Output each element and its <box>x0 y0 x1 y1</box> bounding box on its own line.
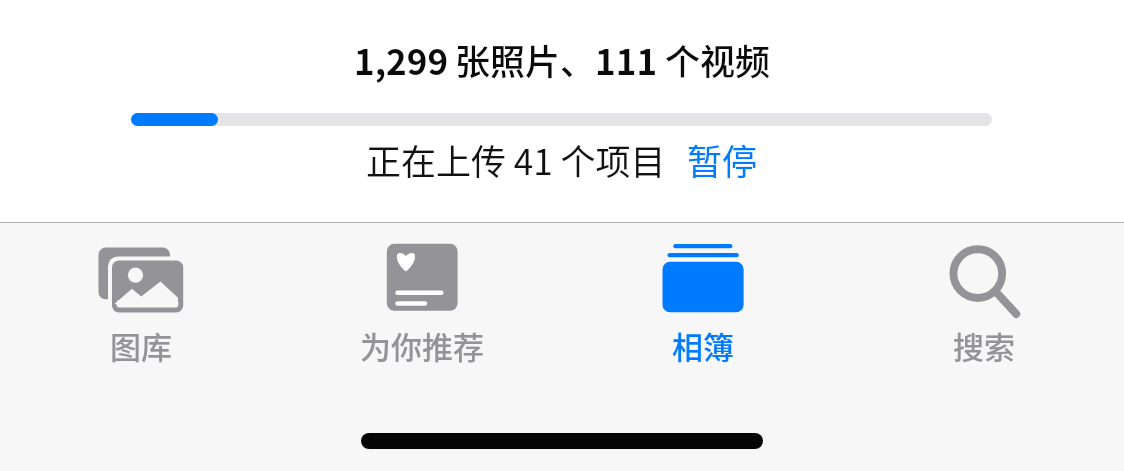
button[interactable]: 图库 <box>0 223 281 471</box>
button[interactable]: 搜索 <box>843 223 1124 471</box>
other: For You <box>376 243 468 318</box>
button[interactable]: 暂停 <box>677 134 768 185</box>
staticText: 暂停 <box>687 134 758 185</box>
button[interactable]: 为你推荐 <box>281 223 562 471</box>
other: Search <box>938 243 1030 318</box>
staticText: 相簿 <box>672 323 734 368</box>
staticText: 搜索 <box>953 323 1015 368</box>
staticText: 为你推荐 <box>360 323 484 368</box>
staticText: 图库 <box>110 323 172 368</box>
staticText: 1,299 张照片、111 个视频 <box>354 34 770 85</box>
other: Library <box>95 243 187 318</box>
button[interactable]: 相簿 <box>562 223 843 471</box>
staticText: 正在上传 41 个项目 <box>366 134 666 185</box>
other: Albums <box>657 243 749 318</box>
